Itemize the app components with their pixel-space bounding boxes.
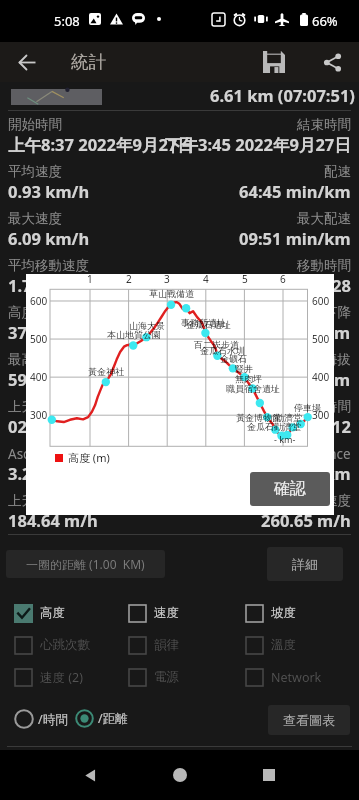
staticText: - km- (274, 433, 296, 445)
staticText: 豎井 (235, 363, 253, 374)
staticText: 勸濟堂 (275, 412, 302, 423)
staticText: 高度上升 (8, 304, 62, 321)
staticText: 01:23:12 (285, 415, 351, 437)
staticText: 詳細 (292, 556, 318, 572)
staticText: 02:11:31 (8, 415, 74, 437)
staticText: 66% (312, 12, 338, 30)
staticText: 3745 m (8, 321, 67, 343)
staticText: 6 (280, 272, 286, 286)
button[interactable]: 溫度 (245, 629, 296, 661)
button[interactable]: 坡度 (245, 597, 296, 629)
staticText: 1.78 km/h (8, 274, 90, 296)
staticText: 593 m (8, 368, 57, 390)
staticText: 260.65 m/h (261, 509, 351, 531)
staticText: 600 (30, 294, 48, 308)
button[interactable]: 電源 (128, 661, 179, 693)
staticText: 500 (312, 332, 330, 346)
staticText: 500 (30, 332, 48, 346)
staticText: 黃金神社 (88, 366, 124, 377)
staticText: 300 (312, 408, 330, 422)
staticText: 高度下降 (297, 304, 351, 321)
staticText: 6.61 km (07:07:51) (210, 84, 355, 106)
staticText: 下降時間 (297, 398, 351, 415)
button[interactable]: Share (315, 42, 349, 82)
staticText: 一圈的距離 (1.00 KM) (26, 556, 145, 572)
button[interactable]: Network (245, 661, 322, 693)
button[interactable]: 一圈的距離 (1.00 KM) (6, 550, 165, 578)
button[interactable]: 韻律 (128, 629, 179, 661)
button[interactable]: Home (160, 755, 200, 795)
button[interactable]: 速度 (128, 597, 179, 629)
staticText: 600 (312, 294, 330, 308)
button[interactable]: /時間 (14, 709, 68, 729)
staticText: 溫度 (271, 637, 296, 653)
button[interactable]: Save (257, 42, 291, 82)
button[interactable]: 詳細 (267, 547, 343, 581)
staticText: 1360 m (292, 368, 351, 390)
staticText: 金瓜石水圳 (200, 345, 245, 356)
staticText: 金瓜石勸濟堂 (247, 421, 301, 432)
button[interactable]: 速度 (2) (14, 661, 83, 693)
staticText: 停車場 (294, 402, 321, 413)
staticText: 韻律 (154, 637, 179, 653)
staticText: 184.64 m/h (8, 509, 98, 531)
staticText: 6.61 km (287, 462, 351, 484)
staticText: 草山戰備道 (149, 288, 194, 299)
staticText: 下午3:45 2022年9月27日 (165, 133, 351, 156)
staticText: 心跳次數 (40, 637, 90, 653)
staticText: 平均移動速度 (8, 257, 89, 274)
staticText: 無肉坪 (235, 373, 262, 384)
staticText: 結束時間 (297, 116, 351, 133)
staticText: 0.93 km/h (8, 180, 90, 202)
staticText: 速度 (154, 605, 179, 621)
staticText: 5 (242, 272, 248, 286)
staticText: 下降速度 (297, 492, 351, 509)
staticText: 3653 m (292, 321, 351, 343)
button[interactable]: Back (10, 42, 44, 82)
staticText: 統計 (71, 51, 106, 73)
staticText: 5:08 (54, 12, 80, 30)
staticText: 最大速度 (8, 210, 62, 227)
staticText: 職員宿舍遺址 (226, 383, 280, 394)
staticText: 電源 (154, 669, 179, 685)
button[interactable]: 心跳次數 (14, 629, 90, 661)
staticText: 400 (312, 370, 330, 384)
staticText: 1 (87, 272, 93, 286)
staticText: 上升時間 (8, 398, 62, 415)
button[interactable]: 高度 (14, 597, 65, 629)
staticText: 上升速度 (8, 492, 62, 509)
staticText: 4 (203, 272, 209, 286)
staticText: 最大配速 (297, 210, 351, 227)
staticText: Network (271, 669, 322, 686)
staticText: 高度 (40, 605, 65, 621)
staticText: 3.24 km (8, 462, 72, 484)
button[interactable]: 查看圖表 (268, 705, 350, 735)
button[interactable]: 確認 (250, 472, 330, 506)
button[interactable]: Recents (249, 755, 289, 795)
staticText: 查看圖表 (283, 712, 335, 728)
staticText: 64:45 min/km (239, 180, 351, 202)
staticText: 金礦石 (220, 353, 247, 364)
staticText: 百二崁步道 (194, 339, 239, 350)
staticText: 09:51 min/km (239, 227, 351, 249)
button[interactable]: /距離 (75, 709, 128, 728)
staticText: 本山地質公園 (107, 329, 161, 340)
staticText: /距離 (98, 710, 128, 727)
staticText: 金瓜石遺址 (186, 319, 231, 330)
staticText: 最高海拔 (8, 351, 62, 368)
staticText: 03:44:28 (285, 274, 351, 296)
staticText: 開始時間 (8, 116, 62, 133)
staticText: Distance (296, 445, 351, 463)
staticText: 300 (30, 408, 48, 422)
staticText: 400 (30, 370, 48, 384)
staticText: 配速 (324, 163, 351, 180)
staticText: 黃金博物館 (236, 412, 281, 423)
staticText: 坡度 (271, 605, 296, 621)
staticText: 平均速度 (8, 163, 62, 180)
staticText: 2 (126, 272, 132, 286)
button[interactable]: Back (70, 755, 110, 795)
staticText: 最高海拔 (297, 351, 351, 368)
staticText: 山海大景 (129, 320, 165, 331)
staticText: /時間 (38, 711, 68, 728)
staticText: 高度 (m) (68, 450, 110, 465)
